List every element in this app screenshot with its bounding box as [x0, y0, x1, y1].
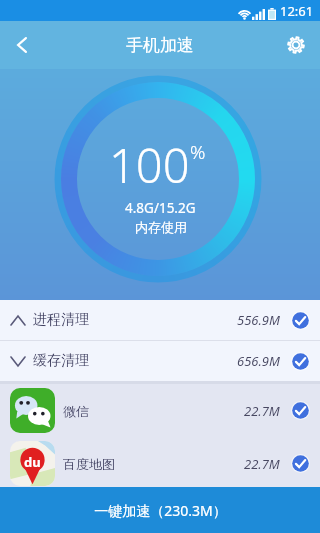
staticText: 656.9M: [237, 352, 280, 370]
staticText: 22.7M: [244, 402, 280, 420]
staticText: 22.7M: [244, 455, 280, 473]
staticText: 缓存清理: [33, 352, 89, 370]
staticText: 556.9M: [237, 311, 280, 329]
staticText: 内存使用: [135, 219, 187, 235]
button[interactable]: Settings: [272, 21, 320, 69]
staticText: 百度地图: [63, 456, 115, 472]
button[interactable]: 缓存清理: [0, 341, 320, 381]
staticText: 4.8G/15.2G: [125, 199, 196, 217]
button[interactable]: 微信: [0, 384, 320, 437]
staticText: 手机加速: [126, 35, 194, 56]
staticText: 一键加速（230.3M）: [94, 501, 227, 520]
staticText: %: [190, 139, 206, 165]
staticText: 12:61: [280, 2, 314, 20]
staticText: du: [24, 453, 41, 471]
staticText: 微信: [63, 403, 89, 419]
button[interactable]: 进程清理: [0, 300, 320, 340]
staticText: 进程清理: [33, 311, 89, 329]
button[interactable]: Back: [0, 24, 44, 66]
button[interactable]: 一键加速（230.3M）: [0, 487, 320, 533]
staticText: 100: [109, 133, 190, 197]
button[interactable]: du: [0, 437, 320, 490]
